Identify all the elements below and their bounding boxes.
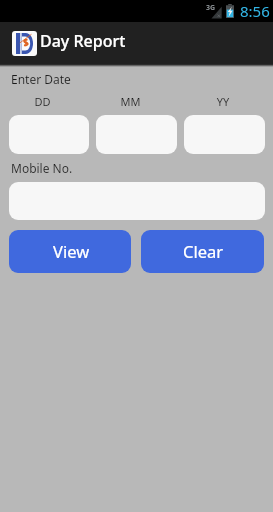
button[interactable]: MM input (96, 115, 177, 154)
staticText: Clear (183, 240, 224, 262)
staticText: 8:56 (240, 1, 270, 21)
staticText: 3G (206, 3, 216, 13)
button[interactable]: Mobile No. input (9, 182, 265, 220)
staticText: DD (9, 94, 76, 109)
button[interactable]: View (9, 230, 131, 273)
button[interactable]: DD input (9, 115, 89, 154)
staticText: View (53, 240, 90, 262)
staticText: Day Report (40, 30, 126, 52)
staticText: Enter Date (11, 71, 71, 87)
staticText: MM (96, 94, 165, 109)
button[interactable]: App logo, navigate up (12, 31, 37, 56)
button[interactable]: Clear (141, 230, 264, 273)
staticText: Mobile No. (11, 160, 73, 176)
staticText: YY (184, 94, 262, 109)
button[interactable]: YY input (184, 115, 265, 154)
